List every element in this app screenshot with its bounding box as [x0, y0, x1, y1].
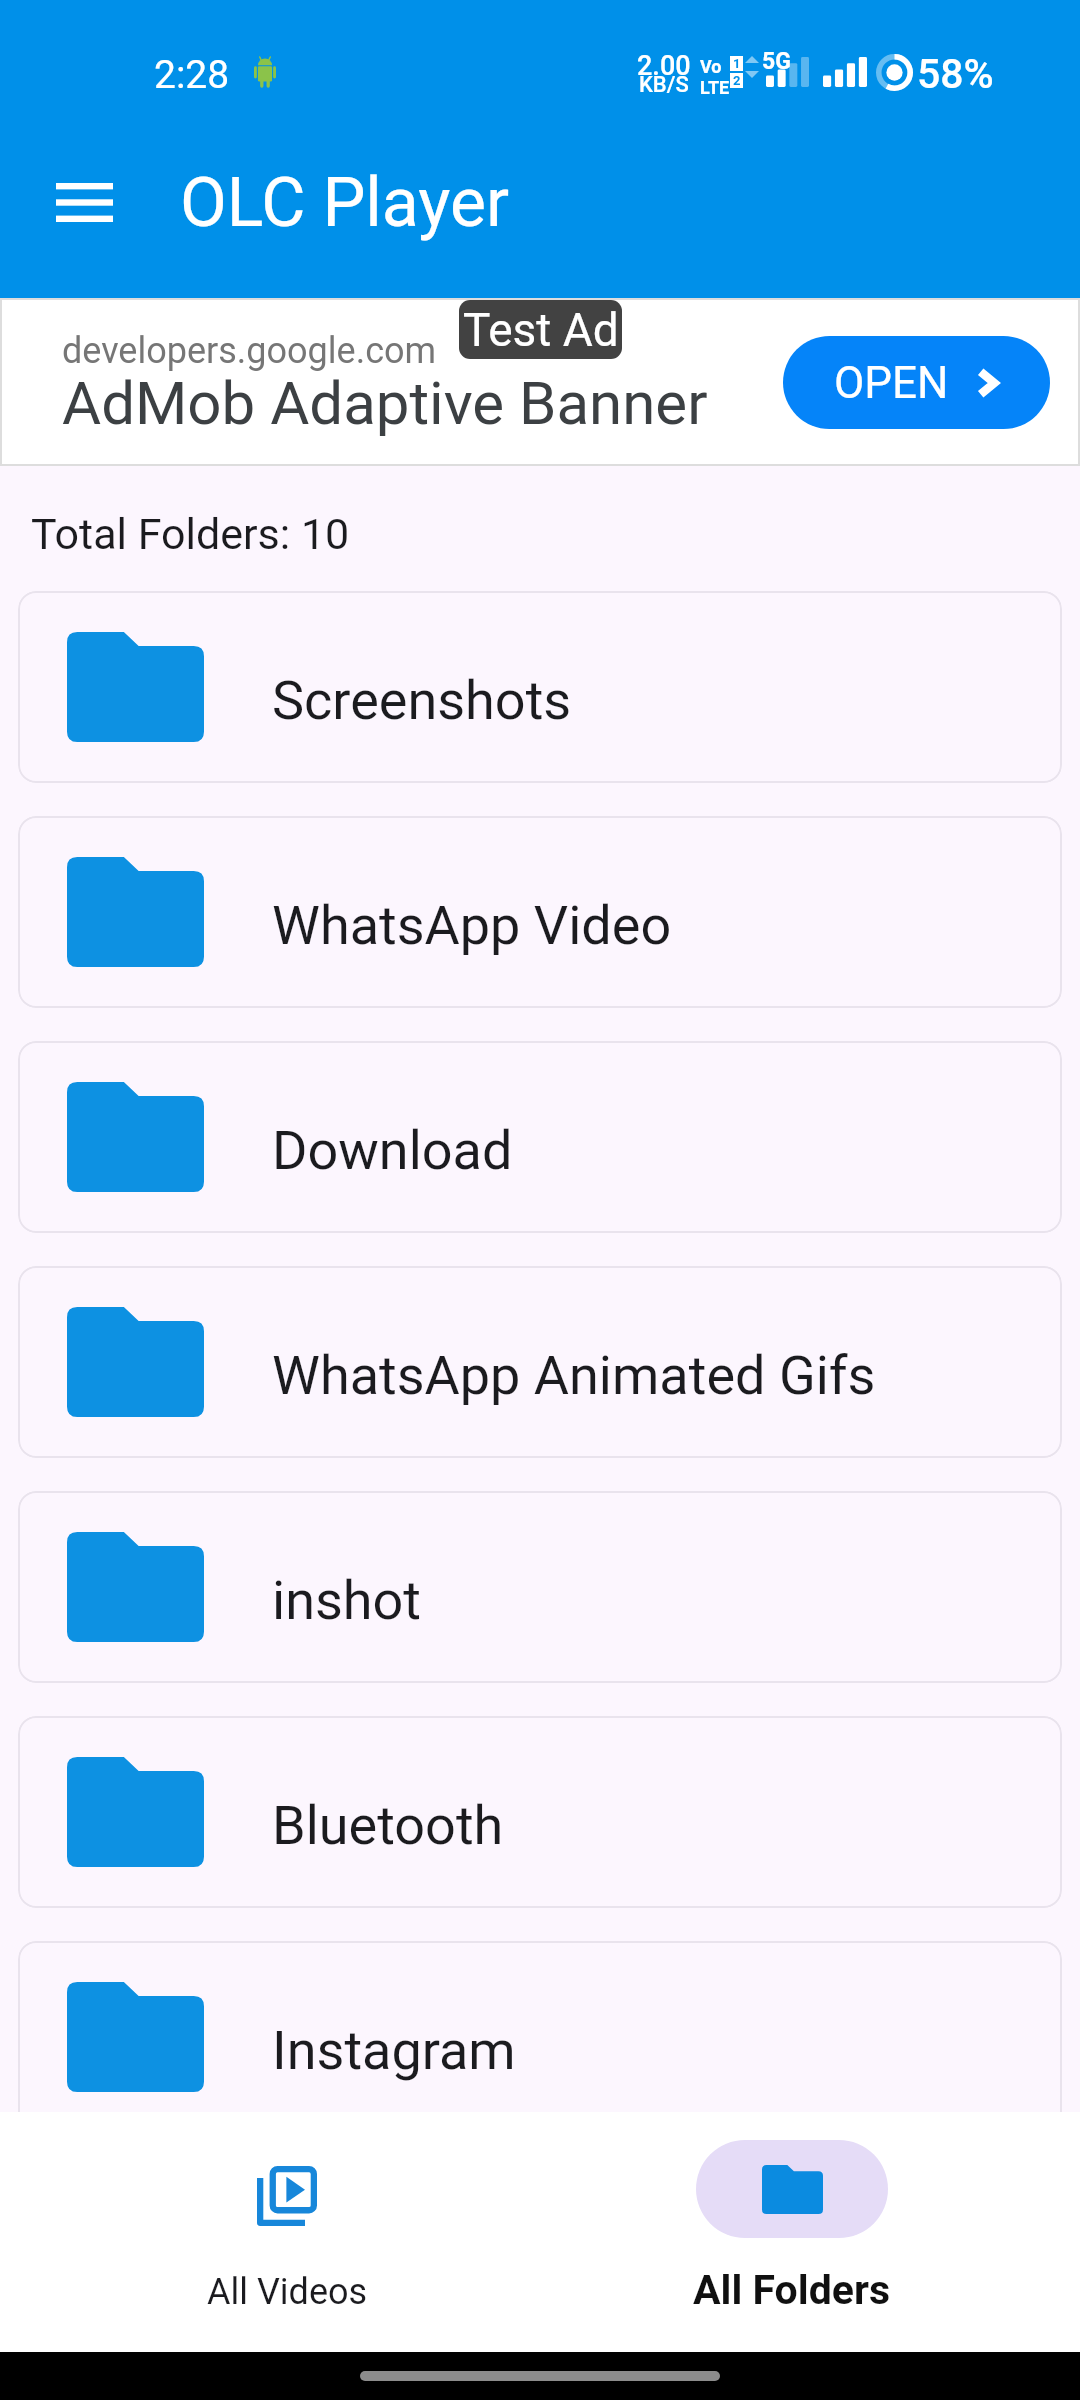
button[interactable]: inshot — [18, 1491, 1062, 1683]
staticText: All Folders — [693, 2266, 891, 2314]
staticText: Test Ad — [463, 303, 619, 357]
staticText: Total Folders: 10 — [31, 509, 350, 559]
staticText: 2.00 — [637, 50, 691, 82]
staticText: Download — [272, 1119, 513, 1182]
staticText: 1 — [733, 56, 741, 71]
staticText: 2 — [733, 73, 741, 88]
button[interactable]: Open navigation menu — [20, 138, 148, 266]
staticText: Screenshots — [272, 669, 572, 732]
button[interactable]: WhatsApp Video — [18, 816, 1062, 1008]
button[interactable]: Screenshots — [18, 591, 1062, 783]
button[interactable]: Bluetooth — [18, 1716, 1062, 1908]
button[interactable]: All Folders — [657, 2112, 927, 2352]
button[interactable]: Instagram — [18, 1941, 1062, 2112]
staticText: Vo — [700, 56, 722, 77]
staticText: Instagram — [272, 2019, 516, 2082]
staticText: WhatsApp Animated Gifs — [272, 1344, 876, 1407]
staticText: OPEN — [834, 357, 949, 409]
button[interactable]: Download — [18, 1041, 1062, 1233]
button[interactable]: All Videos — [152, 2112, 422, 2352]
staticText: KB/S — [639, 72, 689, 98]
staticText: 5G — [762, 48, 791, 75]
button[interactable]: WhatsApp Animated Gifs — [18, 1266, 1062, 1458]
staticText: LTE — [700, 77, 730, 98]
staticText: 2:28 — [154, 52, 230, 98]
staticText: WhatsApp Video — [272, 894, 672, 957]
staticText: inshot — [272, 1569, 422, 1632]
staticText: AdMob Adaptive Banner — [62, 368, 708, 438]
staticText: Bluetooth — [272, 1794, 504, 1857]
staticText: All Videos — [207, 2271, 368, 2313]
staticText: developers.google.com — [62, 330, 437, 372]
staticText: OLC Player — [180, 163, 510, 243]
button[interactable]: OPEN — [783, 336, 1050, 429]
staticText: 58% — [917, 50, 994, 98]
